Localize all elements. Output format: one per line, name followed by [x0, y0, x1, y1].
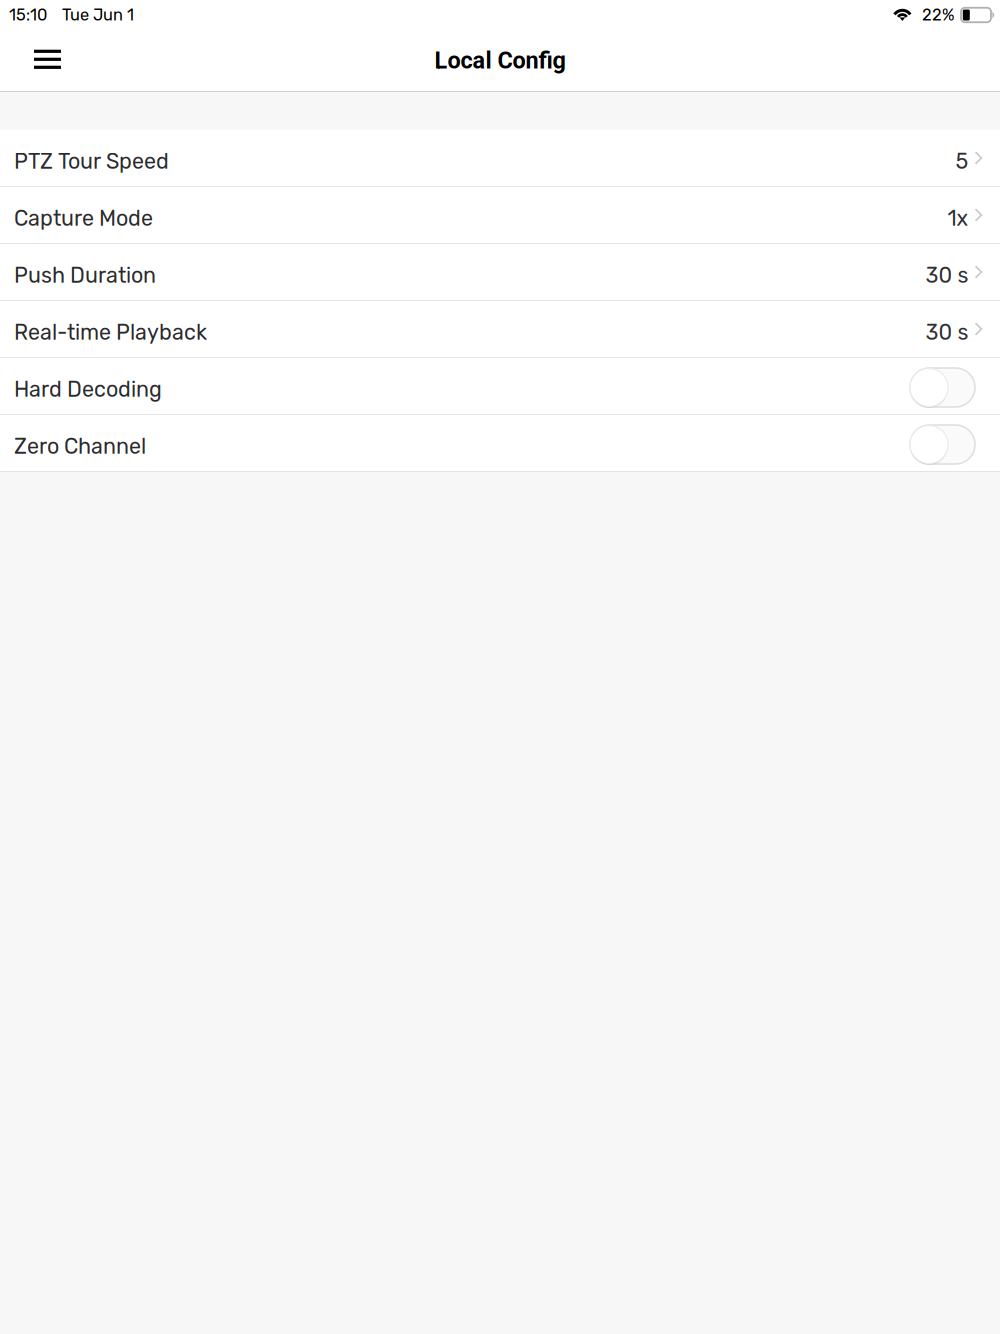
staticText: 30 s — [925, 320, 968, 345]
staticText: Zero Channel — [14, 434, 146, 459]
button[interactable]: Real-time Playback — [0, 301, 1000, 358]
button[interactable]: Capture Mode — [0, 187, 1000, 244]
staticText: PTZ Tour Speed — [14, 149, 169, 174]
button[interactable]: Zero Channel — [0, 415, 1000, 472]
button[interactable]: Push Duration — [0, 244, 1000, 301]
staticText: 15:10 — [9, 5, 47, 25]
staticText: Tue Jun 1 — [62, 5, 134, 25]
staticText: 1x — [947, 206, 968, 231]
button[interactable]: Hard Decoding — [0, 358, 1000, 415]
staticText: Real-time Playback — [14, 320, 207, 345]
button[interactable]: PTZ Tour Speed — [0, 130, 1000, 187]
staticText: Hard Decoding — [14, 377, 162, 402]
staticText: 5 — [955, 149, 968, 174]
staticText: 22% — [922, 5, 954, 25]
staticText: 30 s — [925, 263, 968, 288]
staticText: Capture Mode — [14, 206, 153, 231]
button[interactable]: Menu — [18, 31, 76, 89]
staticText: Push Duration — [14, 263, 156, 288]
staticText: Local Config — [434, 47, 565, 74]
